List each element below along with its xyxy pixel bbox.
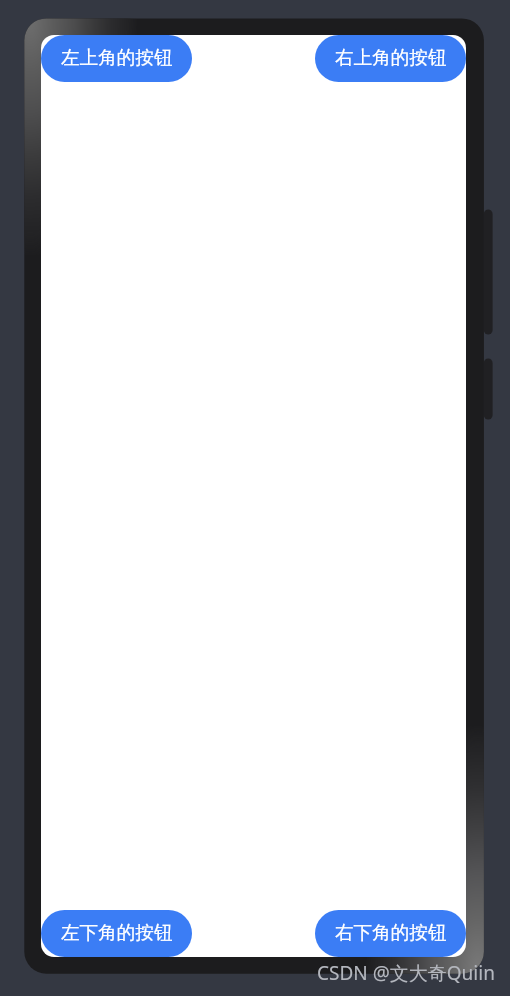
staticText: 右上角的按钮	[335, 46, 447, 69]
staticText: CSDN @文大奇Quiin	[317, 960, 495, 986]
button[interactable]: 左上角的按钮	[41, 35, 192, 82]
staticText: 右下角的按钮	[335, 921, 447, 944]
button[interactable]: 右上角的按钮	[315, 35, 466, 82]
staticText: 左下角的按钮	[61, 921, 173, 944]
button[interactable]: 右下角的按钮	[315, 910, 466, 957]
button[interactable]: 左下角的按钮	[41, 910, 192, 957]
staticText: 左上角的按钮	[61, 46, 173, 69]
